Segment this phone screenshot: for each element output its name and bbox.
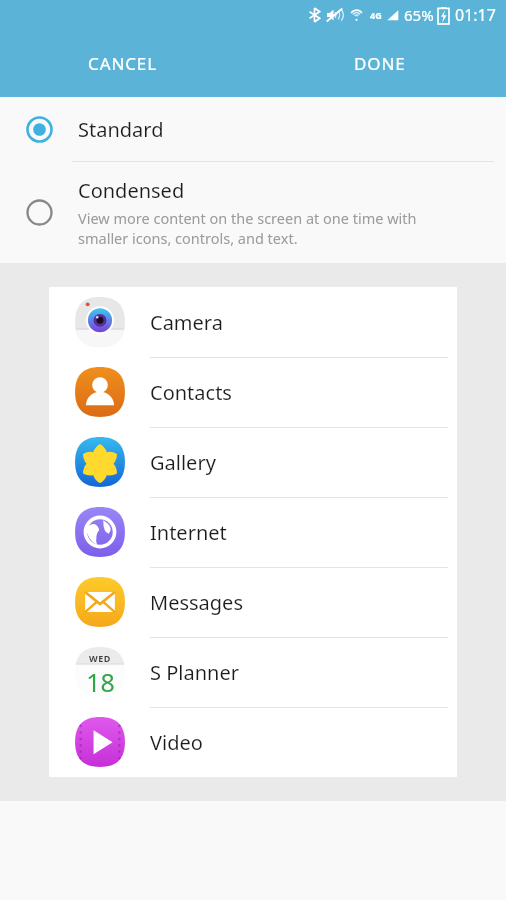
staticText: 4G <box>370 9 382 21</box>
staticText: Internet <box>150 519 227 546</box>
staticText: Contacts <box>150 379 232 406</box>
button[interactable]: DONE <box>340 43 420 84</box>
staticText: CANCEL <box>88 52 158 75</box>
other: Bluetooth <box>308 7 321 23</box>
staticText: S Planner <box>150 659 239 686</box>
button[interactable]: Video <box>49 707 457 777</box>
button[interactable]: Contacts <box>49 357 457 427</box>
button[interactable]: Internet <box>49 497 457 567</box>
staticText: WED <box>89 652 111 664</box>
button[interactable]: Standard <box>0 97 506 161</box>
staticText: Condensed <box>78 177 185 204</box>
staticText: Video <box>150 729 203 756</box>
staticText: 65% <box>404 5 434 25</box>
staticText: Camera <box>150 309 223 336</box>
staticText: 18 <box>86 665 115 699</box>
other: Wi-Fi <box>349 7 364 23</box>
other: Mobile signal <box>385 8 399 22</box>
button[interactable]: Camera <box>49 287 457 357</box>
staticText: Messages <box>150 589 243 616</box>
button[interactable]: Condensed <box>0 162 506 263</box>
button[interactable]: Gallery <box>49 427 457 497</box>
staticText: Gallery <box>150 449 216 476</box>
staticText: Standard <box>78 116 164 143</box>
staticText: View more content on the screen at one t… <box>78 208 464 249</box>
other: Sound muted <box>326 7 343 23</box>
button[interactable]: CANCEL <box>74 43 172 84</box>
staticText: 01:17 <box>455 4 496 26</box>
staticText: DONE <box>354 52 406 75</box>
button[interactable]: WED <box>49 637 457 707</box>
button[interactable]: Messages <box>49 567 457 637</box>
other: Battery charging <box>438 7 449 24</box>
